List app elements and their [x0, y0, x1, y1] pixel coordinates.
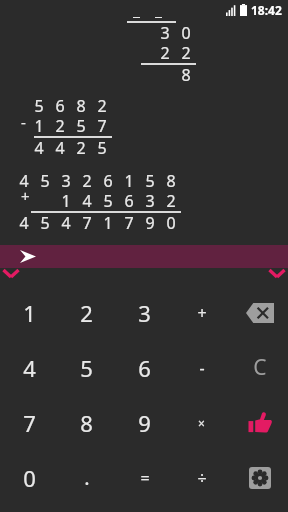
staticText: 3 — [145, 190, 155, 212]
button[interactable]: 0 — [1, 450, 58, 505]
staticText: 2 — [181, 42, 191, 64]
staticText: 4 — [61, 212, 71, 234]
button[interactable]: 1 — [1, 285, 58, 340]
button[interactable]: Scroll down left — [2, 268, 20, 279]
staticText: 6 — [138, 353, 151, 383]
staticText: 1 — [23, 298, 36, 328]
staticText: 4 — [34, 137, 44, 159]
staticText: . — [84, 464, 90, 491]
button[interactable]: 3 — [116, 285, 173, 340]
staticText: 9 — [145, 212, 155, 234]
button[interactable]: Settings — [231, 450, 288, 505]
staticText: 3 — [160, 22, 170, 44]
button[interactable]: Current entry — [0, 245, 288, 268]
staticText: 3 — [138, 298, 151, 328]
button[interactable]: Clear — [231, 340, 288, 395]
button[interactable]: 5 — [58, 340, 115, 395]
staticText: - — [199, 357, 205, 379]
staticText: 7 — [82, 212, 92, 234]
staticText: 6 — [103, 170, 113, 192]
staticText: 18:42 — [251, 2, 282, 18]
staticText: 5 — [76, 115, 86, 137]
staticText: 5 — [40, 170, 50, 192]
button[interactable]: 4 — [1, 340, 58, 395]
staticText: 1 — [61, 190, 71, 212]
staticText: 5 — [40, 212, 50, 234]
staticText: 0 — [166, 212, 176, 234]
staticText: 2 — [160, 42, 170, 64]
button[interactable]: Scroll down right — [268, 268, 286, 279]
staticText: 0 — [23, 463, 36, 493]
staticText: 5 — [145, 170, 155, 192]
button[interactable]: Plus — [173, 285, 230, 340]
staticText: 8 — [76, 95, 86, 117]
staticText: 2 — [55, 115, 65, 137]
staticText: 1 — [34, 115, 44, 137]
staticText: = — [140, 467, 150, 489]
staticText: 8 — [80, 408, 93, 438]
staticText: 2 — [80, 298, 93, 328]
staticText: 3 — [61, 170, 71, 192]
button[interactable]: Decimal point — [58, 450, 115, 505]
button[interactable]: 6 — [116, 340, 173, 395]
staticText: 4 — [19, 212, 29, 234]
staticText: 5 — [34, 95, 44, 117]
staticText: 2 — [76, 137, 86, 159]
staticText: 7 — [97, 115, 107, 137]
staticText: 2 — [82, 170, 92, 192]
staticText: 1 — [103, 212, 113, 234]
button[interactable]: Equals — [116, 450, 173, 505]
button[interactable]: Confirm — [231, 395, 288, 450]
button[interactable]: Multiply — [173, 395, 230, 450]
staticText: 6 — [124, 190, 134, 212]
button[interactable]: 7 — [1, 395, 58, 450]
staticText: 6 — [55, 95, 65, 117]
staticText: 7 — [23, 408, 36, 438]
staticText: 1 — [124, 170, 134, 192]
staticText: 0 — [181, 22, 191, 44]
staticText: ÷ — [197, 467, 207, 489]
staticText: 5 — [103, 190, 113, 212]
staticText: 4 — [19, 170, 29, 192]
staticText: × — [198, 415, 205, 431]
staticText: 5 — [80, 353, 93, 383]
button[interactable]: Backspace — [231, 285, 288, 340]
staticText: 2 — [166, 190, 176, 212]
staticText: 8 — [181, 64, 191, 86]
button[interactable]: Divide — [173, 450, 230, 505]
staticText: 7 — [124, 212, 134, 234]
staticText: - — [21, 112, 26, 132]
staticText: 2 — [97, 95, 107, 117]
button[interactable]: 2 — [58, 285, 115, 340]
staticText: 4 — [82, 190, 92, 212]
staticText: + — [197, 302, 207, 324]
staticText: 5 — [97, 137, 107, 159]
staticText: 4 — [55, 137, 65, 159]
button[interactable]: 8 — [58, 395, 115, 450]
staticText: 9 — [138, 408, 151, 438]
staticText: + — [21, 186, 30, 206]
staticText: 4 — [23, 353, 36, 383]
staticText: C — [253, 353, 267, 382]
staticText: 8 — [166, 170, 176, 192]
button[interactable]: 9 — [116, 395, 173, 450]
button[interactable]: Minus — [173, 340, 230, 395]
